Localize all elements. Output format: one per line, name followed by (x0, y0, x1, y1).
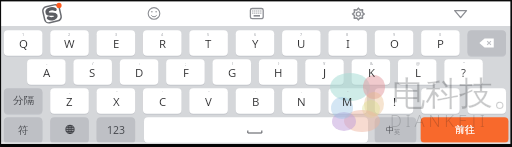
staticText: 符 (18, 124, 29, 137)
button[interactable]: X (97, 90, 136, 113)
staticText: ˇ (116, 90, 118, 96)
staticText: 1 (22, 32, 25, 37)
staticText: ` (255, 90, 257, 96)
button[interactable]: Hide keyboard (439, 0, 483, 26)
button[interactable]: S (73, 61, 112, 84)
button[interactable]: W (50, 32, 89, 55)
button[interactable]: F (166, 61, 205, 84)
staticText: @ (416, 61, 420, 67)
button[interactable]: Sogou input method (30, 0, 74, 26)
staticText: 5 (207, 32, 210, 37)
staticText: DIANKEJI (390, 109, 489, 132)
staticText: 7 (300, 32, 303, 37)
staticText: ( (232, 61, 234, 67)
button[interactable]: O (375, 32, 414, 55)
button[interactable]: Q (4, 32, 43, 55)
staticText: C (159, 94, 167, 110)
button[interactable]: R (143, 32, 182, 55)
staticText: 9 (393, 32, 396, 37)
staticText: J (323, 65, 327, 81)
staticText: 分隔 (13, 94, 35, 108)
button[interactable]: Space (144, 117, 368, 143)
button[interactable]: U (282, 32, 321, 55)
staticText: 前往 (455, 124, 475, 136)
staticText: G (228, 65, 237, 81)
staticText: V (205, 94, 212, 110)
button[interactable]: ! (375, 90, 414, 113)
staticText: ˇ (208, 90, 210, 96)
staticText: ) (278, 61, 280, 67)
button[interactable]: E (97, 32, 136, 55)
button[interactable]: 123 (97, 117, 136, 143)
staticText: 英 (394, 128, 401, 136)
button[interactable]: 前往 (421, 117, 509, 143)
staticText: - (69, 90, 71, 96)
staticText: A (43, 65, 51, 81)
staticText: · (301, 90, 303, 96)
staticText: D (135, 65, 144, 81)
staticText: 6 (254, 32, 257, 37)
button[interactable]: 符 (4, 117, 43, 143)
staticText: Q (19, 36, 28, 52)
button[interactable]: Y (236, 32, 275, 55)
staticText: 3 (115, 32, 118, 37)
staticText: ! (393, 94, 397, 110)
staticText: ? (461, 65, 466, 81)
button[interactable]: G (213, 61, 252, 84)
button[interactable]: T (189, 32, 228, 55)
staticText: - (46, 61, 48, 67)
button[interactable]: ? (444, 61, 483, 84)
button[interactable]: P (421, 32, 460, 55)
button[interactable]: V (189, 90, 228, 113)
staticText: W (64, 36, 75, 52)
staticText: 8 (346, 32, 349, 37)
button[interactable]: D (120, 61, 159, 84)
staticText: 4 (161, 32, 164, 37)
button[interactable]: 中 (375, 117, 416, 143)
staticText: Y (252, 36, 259, 52)
button[interactable]: N (282, 90, 321, 113)
staticText: ´ (162, 90, 164, 96)
staticText: M (342, 94, 353, 110)
button[interactable] (468, 90, 507, 113)
staticText: T (205, 36, 212, 52)
staticText: S (89, 65, 96, 81)
staticText: B (252, 94, 260, 110)
staticText: I (346, 36, 350, 52)
button[interactable]: Emoji (132, 0, 176, 26)
button[interactable]: Backspace (468, 30, 507, 56)
button[interactable]: C (143, 90, 182, 113)
button[interactable]: L (398, 61, 437, 84)
button[interactable]: B (236, 90, 275, 113)
button[interactable]: Keyboard layout (235, 0, 279, 26)
button[interactable]: Switch language (50, 117, 89, 143)
button[interactable] (421, 90, 460, 113)
staticText: H (274, 65, 283, 81)
staticText: R (159, 36, 167, 52)
button[interactable]: H (259, 61, 298, 84)
staticText: / (92, 61, 94, 67)
button[interactable]: Settings (337, 0, 381, 26)
staticText: : (139, 61, 141, 67)
button[interactable]: A (27, 61, 66, 84)
staticText: 电科技。 (392, 73, 512, 115)
staticText: ¥ (323, 61, 326, 67)
staticText: N (297, 94, 306, 110)
staticText: U (297, 36, 306, 52)
button[interactable]: J (305, 61, 344, 84)
staticText: E (113, 36, 120, 52)
staticText: ˉ (347, 90, 349, 96)
button[interactable]: K (352, 61, 391, 84)
staticText: K (368, 65, 376, 81)
staticText: 中 (386, 125, 395, 136)
staticText: " (463, 61, 465, 67)
button[interactable]: M (328, 90, 367, 113)
staticText: 2 (68, 32, 71, 37)
staticText: L (415, 65, 421, 81)
button[interactable]: 分隔 (4, 88, 43, 114)
button[interactable]: I (328, 32, 367, 55)
staticText: P (437, 36, 444, 52)
button[interactable]: Z (50, 90, 89, 113)
staticText: F (183, 65, 189, 81)
staticText: ; (185, 61, 187, 67)
